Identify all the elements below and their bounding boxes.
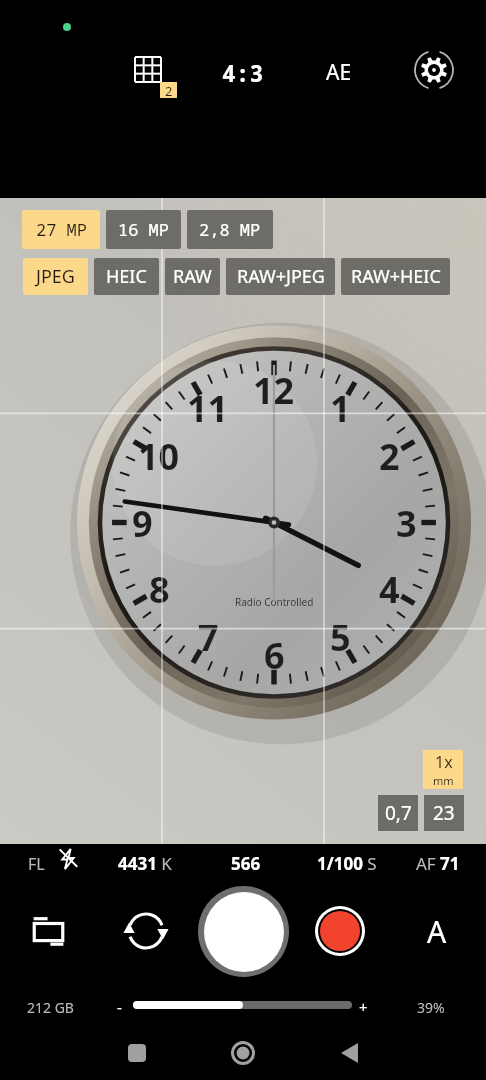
button[interactable]: 4:3 xyxy=(210,50,275,94)
button[interactable]: AE xyxy=(315,50,363,94)
staticText: AF 71 xyxy=(416,852,460,875)
staticText: 10 xyxy=(138,432,180,480)
staticText: 9 xyxy=(132,499,153,547)
button[interactable]: Record video xyxy=(308,899,372,963)
staticText: 12 xyxy=(253,366,295,414)
button[interactable]: 0,7 xyxy=(378,795,418,831)
button[interactable]: 23 xyxy=(424,795,464,831)
staticText: A xyxy=(427,911,447,952)
staticText: JPEG xyxy=(36,264,75,289)
button[interactable]: 16 MP xyxy=(106,210,181,249)
button[interactable] xyxy=(133,1001,352,1009)
button[interactable]: Switch camera xyxy=(114,899,178,963)
staticText: 0,7 xyxy=(385,800,412,826)
button[interactable]: JPEG xyxy=(23,258,88,295)
button[interactable]: 566 xyxy=(203,845,289,881)
button[interactable]: RAW xyxy=(165,258,220,295)
staticText: 1 xyxy=(330,384,351,432)
button[interactable]: HEIC xyxy=(94,258,159,295)
staticText: 1x xyxy=(435,751,453,773)
button[interactable]: RAW+JPEG xyxy=(226,258,335,295)
staticText: 27 MP xyxy=(36,218,87,241)
staticText: RAW xyxy=(173,264,212,289)
button[interactable]: Grid overlay xyxy=(125,47,171,93)
staticText: 8 xyxy=(149,565,170,613)
button[interactable]: 1/100 S xyxy=(304,845,390,881)
staticText: 5 xyxy=(330,613,351,661)
staticText: RAW+JPEG xyxy=(237,264,325,289)
button[interactable]: Home xyxy=(214,1026,271,1080)
staticText: 4431 K xyxy=(118,852,172,875)
button[interactable]: 1x xyxy=(423,750,463,789)
staticText: 4:3 xyxy=(222,57,264,88)
staticText: 2 xyxy=(165,82,173,98)
staticText: 6 xyxy=(264,631,285,679)
staticText: 2,8 MP xyxy=(199,218,261,241)
button[interactable]: Gallery xyxy=(16,899,80,963)
button[interactable]: AF 71 xyxy=(395,845,481,881)
button[interactable]: A xyxy=(405,899,469,963)
staticText: - xyxy=(117,997,122,1017)
staticText: Radio Controlled xyxy=(235,595,314,609)
staticText: 11 xyxy=(187,384,229,432)
button[interactable]: RAW+HEIC xyxy=(341,258,450,295)
staticText: mm xyxy=(433,773,454,788)
button[interactable]: 4431 K xyxy=(102,845,188,881)
staticText: RAW+HEIC xyxy=(351,264,441,289)
staticText: AE xyxy=(326,58,352,87)
staticText: 212 GB xyxy=(27,998,74,1017)
staticText: + xyxy=(359,997,368,1017)
staticText: 1/100 S xyxy=(317,852,377,875)
staticText: HEIC xyxy=(106,264,147,289)
staticText: 23 xyxy=(433,800,455,826)
button[interactable]: 2,8 MP xyxy=(187,210,273,249)
staticText: 566 xyxy=(231,852,261,875)
staticText: 39% xyxy=(417,998,445,1017)
staticText: 3 xyxy=(396,499,417,547)
staticText: 16 MP xyxy=(118,218,169,241)
staticText: FL xyxy=(28,853,45,875)
button[interactable]: Shutter xyxy=(197,885,290,978)
staticText: 4 xyxy=(379,565,400,613)
staticText: 2 xyxy=(379,432,400,480)
button[interactable]: Back xyxy=(321,1026,378,1080)
button[interactable]: Flash off xyxy=(18,845,84,881)
button[interactable]: Settings xyxy=(410,46,458,94)
staticText: 7 xyxy=(198,613,219,661)
button[interactable]: 27 MP xyxy=(22,210,100,249)
button[interactable]: Recent apps xyxy=(108,1026,165,1080)
